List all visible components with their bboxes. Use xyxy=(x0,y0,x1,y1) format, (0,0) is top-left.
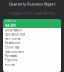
staticText: Prepared for the board meeting xyxy=(9,12,55,15)
button[interactable]: Net income xyxy=(3,37,61,41)
button[interactable]: Renewals xyxy=(3,54,61,58)
staticText: New customers xyxy=(5,50,24,53)
button[interactable]: New customers xyxy=(3,49,61,54)
button[interactable]: Forecast xyxy=(3,62,61,67)
staticText: Renewals xyxy=(5,54,17,58)
staticText: Headcount xyxy=(5,41,20,45)
button[interactable]: Headcount xyxy=(3,41,61,45)
staticText: Forecast xyxy=(5,63,15,66)
button[interactable]: Pipeline xyxy=(3,58,61,62)
staticText: $4.2M xyxy=(5,23,16,28)
staticText: Quarterly Business Report xyxy=(9,1,55,7)
staticText: Net income xyxy=(5,37,21,40)
staticText: Gross margin xyxy=(5,28,22,32)
staticText: Operating cost xyxy=(5,33,25,36)
button[interactable]: Gross margin xyxy=(3,28,61,32)
staticText: Revenue xyxy=(5,19,17,23)
staticText: Pipeline xyxy=(5,58,18,62)
button[interactable]: Operating cost xyxy=(3,32,61,37)
staticText: Churn rate xyxy=(5,46,20,49)
button[interactable]: Churn rate xyxy=(3,45,61,49)
